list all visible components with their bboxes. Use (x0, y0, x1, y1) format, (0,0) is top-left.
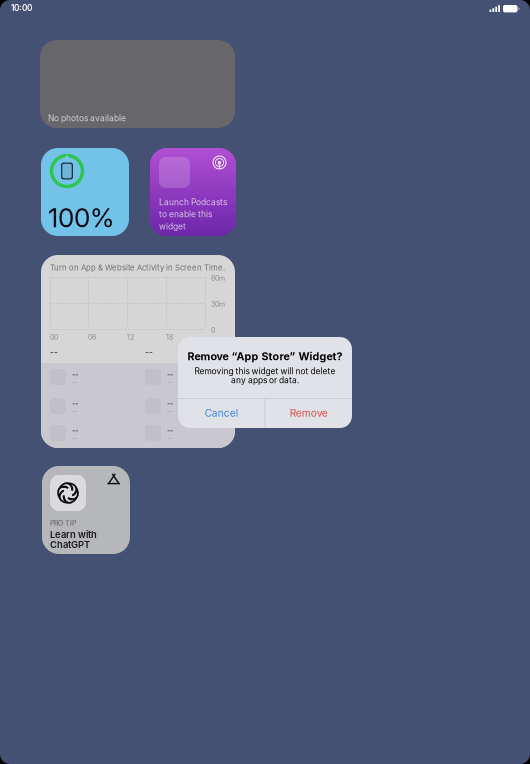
staticText: widget (159, 221, 186, 231)
staticText: -- (167, 378, 173, 386)
staticText: -- (72, 426, 78, 435)
staticText: 06 (88, 333, 96, 341)
staticText: ChatGPT (50, 539, 90, 550)
staticText: -- (167, 370, 173, 379)
staticText: any apps or data. (231, 375, 299, 385)
staticText: Remove (290, 407, 328, 419)
staticText: 00 (50, 333, 58, 341)
staticText: -- (167, 434, 173, 442)
button[interactable]: Turn on App & Website Activity in Screen… (41, 255, 235, 448)
staticText: Learn with (50, 529, 97, 540)
staticText: -- (72, 434, 78, 442)
staticText: -- (72, 370, 78, 379)
staticText: 10:00 (11, 3, 32, 13)
staticText: Turn on App & Website Activity in Screen… (50, 263, 225, 272)
staticText: Launch Podcasts (159, 197, 227, 207)
button[interactable]: No photos available (40, 40, 235, 128)
staticText: -- (72, 378, 78, 386)
staticText: 12 (127, 333, 134, 341)
staticText: 0 (211, 326, 215, 334)
staticText: Removing this widget will not delete (194, 366, 335, 376)
staticText: 60m (211, 274, 225, 282)
staticText: 30m (211, 300, 225, 308)
staticText: No photos available (48, 113, 126, 123)
staticText: Cancel (205, 407, 238, 419)
button[interactable]: Cancel (178, 398, 265, 428)
staticText: 100% (48, 202, 114, 233)
staticText: -- (167, 399, 173, 408)
button[interactable]: Remove (265, 398, 352, 428)
staticText: PRO TIP (50, 519, 76, 527)
button[interactable]: Launch Podcasts (150, 148, 236, 236)
staticText: 18 (166, 333, 173, 341)
button[interactable]: PRO TIP (42, 466, 130, 554)
staticText: -- (167, 426, 173, 435)
staticText: -- (145, 347, 153, 357)
staticText: to enable this (159, 209, 212, 219)
staticText: -- (72, 407, 78, 415)
staticText: -- (167, 407, 173, 415)
staticText: -- (50, 347, 58, 357)
button[interactable]: 100% (41, 148, 129, 236)
staticText: Remove “App Store” Widget? (187, 350, 342, 363)
staticText: -- (72, 399, 78, 408)
